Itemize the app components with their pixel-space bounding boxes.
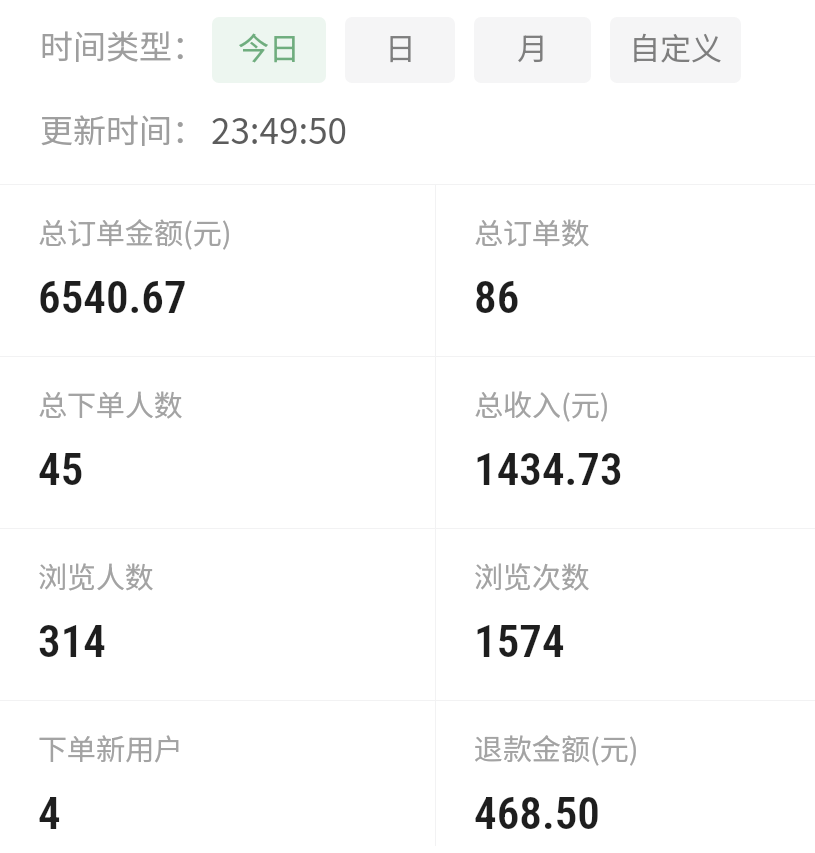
button[interactable]: 退款金额(元) [436,700,815,846]
button[interactable]: 下单新用户 [0,700,435,846]
staticText: 自定义 [629,24,722,69]
staticText: 86 [474,271,520,324]
staticText: 45 [38,443,84,496]
staticText: 总下单人数 [38,382,184,424]
button[interactable]: 总订单数 [436,184,815,356]
staticText: 浏览次数 [474,554,591,596]
button[interactable]: 自定义 [610,17,741,83]
staticText: 1434.73 [474,443,623,496]
staticText: 4 [38,787,61,840]
staticText: 日 [385,24,416,69]
staticText: 6540.67 [38,271,187,324]
staticText: 总订单金额(元) [38,210,232,252]
staticText: 更新时间： [40,105,205,153]
staticText: 总订单数 [474,210,591,252]
staticText: 时间类型： [40,21,205,69]
button[interactable]: 总下单人数 [0,356,435,528]
button[interactable]: 今日 [212,17,326,83]
button[interactable]: 浏览人数 [0,528,435,700]
staticText: 314 [38,615,106,668]
staticText: 今日 [238,24,300,69]
staticText: 总收入(元) [474,382,610,424]
staticText: 退款金额(元) [474,726,639,768]
staticText: 468.50 [474,787,600,840]
staticText: 1574 [474,615,565,668]
button[interactable]: 总收入(元) [436,356,815,528]
staticText: 浏览人数 [38,554,155,596]
staticText: 23:49:50 [211,103,348,154]
staticText: 下单新用户 [38,726,184,768]
button[interactable]: 日 [345,17,455,83]
button[interactable]: 月 [474,17,591,83]
staticText: 月 [517,24,548,69]
button[interactable]: 浏览次数 [436,528,815,700]
button[interactable]: 总订单金额(元) [0,184,435,356]
